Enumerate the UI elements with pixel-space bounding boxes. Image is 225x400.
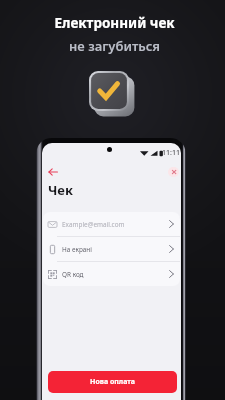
staticText: Електронний чек (54, 14, 175, 32)
button[interactable]: Example@email.com (43, 212, 180, 236)
staticText: QR код (62, 270, 84, 279)
button[interactable]: Нова оплата (48, 371, 177, 393)
staticText: Нова оплата (90, 377, 135, 387)
staticText: не загубиться (69, 37, 160, 55)
staticText: На екрані (62, 245, 92, 254)
staticText: Чек (48, 181, 73, 199)
staticText: 11:11 (162, 148, 180, 158)
button[interactable]: Close (166, 165, 180, 179)
button[interactable]: QR код (43, 262, 180, 286)
staticText: Example@email.com (62, 220, 125, 229)
button[interactable]: Back (46, 165, 60, 179)
button[interactable]: На екрані (43, 237, 180, 261)
